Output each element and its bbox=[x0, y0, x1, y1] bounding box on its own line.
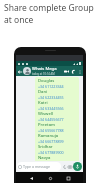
staticText: Sridhar bbox=[38, 144, 53, 150]
staticText: at once bbox=[4, 14, 34, 26]
button[interactable]: More options bbox=[77, 69, 82, 74]
staticText: Ramanuja bbox=[38, 133, 59, 139]
staticText: Wiswell bbox=[38, 111, 54, 117]
staticText: Whats Mega bbox=[32, 66, 57, 72]
staticText: Navya bbox=[38, 155, 51, 161]
staticText: Preetam bbox=[38, 122, 56, 128]
button[interactable]: Attach bbox=[62, 164, 67, 169]
staticText: today at 10:14 AM bbox=[32, 72, 55, 76]
button[interactable]: Back bbox=[27, 174, 35, 182]
staticText: +34 611223344 bbox=[38, 84, 64, 89]
staticText: +34 677889900 bbox=[38, 150, 64, 155]
button[interactable]: Call bbox=[70, 68, 77, 75]
button[interactable]: Back bbox=[16, 66, 83, 76]
staticText: +34 622334455 bbox=[38, 95, 64, 100]
staticText: Type a message bbox=[23, 164, 50, 169]
button[interactable]: Back bbox=[17, 69, 22, 74]
staticText: Katri bbox=[38, 100, 48, 106]
staticText: Dani bbox=[38, 89, 48, 95]
button[interactable]: Video call bbox=[63, 68, 70, 75]
button[interactable]: Type a message bbox=[17, 162, 61, 171]
staticText: Douglas bbox=[38, 78, 55, 84]
staticText: +34 666778899 bbox=[38, 139, 64, 144]
button[interactable]: Voice message bbox=[73, 162, 82, 171]
button[interactable]: Home bbox=[46, 174, 54, 182]
staticText: +34 633445566 bbox=[38, 106, 64, 111]
staticText: Share complete Group bbox=[4, 2, 94, 14]
button[interactable]: Recents bbox=[64, 174, 72, 182]
staticText: +34 644556677 bbox=[38, 117, 64, 122]
staticText: +34 655667788 bbox=[38, 128, 64, 133]
button[interactable]: Camera bbox=[67, 164, 72, 169]
